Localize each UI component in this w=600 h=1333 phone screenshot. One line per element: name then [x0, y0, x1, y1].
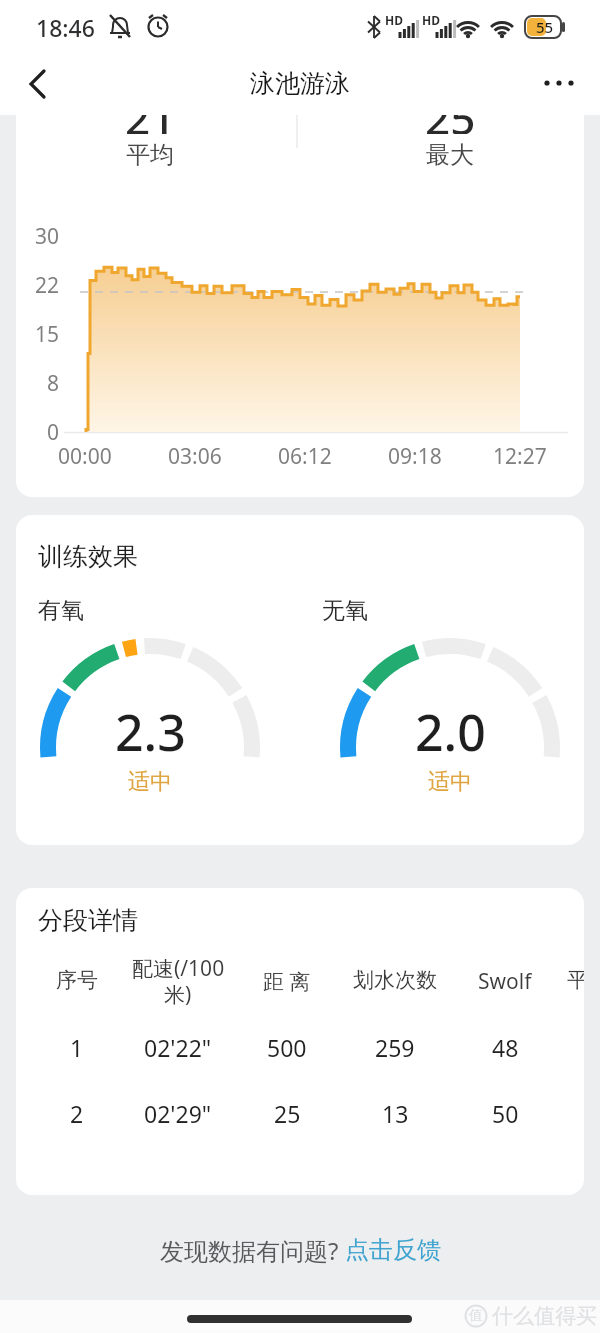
staticText: 03:06: [168, 442, 222, 468]
staticText: 02'29": [144, 1098, 212, 1126]
staticText: 48: [492, 1032, 519, 1060]
staticText: 25: [425, 115, 476, 134]
staticText: 分段详情: [38, 905, 138, 935]
staticText: 泳池游泳: [250, 68, 350, 99]
staticText: 有氧: [38, 596, 84, 624]
staticText: 适中: [428, 768, 472, 796]
staticText: 米): [164, 980, 192, 1006]
staticText: 500: [267, 1032, 307, 1060]
staticText: 55: [536, 17, 554, 37]
staticText: 平均: [126, 140, 174, 168]
staticText: 训练效果: [38, 541, 138, 571]
staticText: 距 离: [263, 967, 311, 993]
staticText: 259: [375, 1032, 415, 1060]
staticText: 06:12: [278, 442, 332, 468]
staticText: 22: [35, 271, 60, 297]
staticText: 30: [35, 222, 60, 248]
staticText: 2.0: [415, 698, 486, 758]
staticText: 09:18: [388, 442, 442, 468]
staticText: HD: [422, 12, 440, 28]
staticText: 2: [70, 1098, 84, 1126]
staticText: 18:46: [36, 12, 95, 42]
button[interactable]: [534, 62, 584, 104]
staticText: 1: [70, 1032, 84, 1060]
staticText: 无氧: [322, 596, 368, 624]
staticText: 13: [382, 1098, 409, 1126]
staticText: 25: [274, 1098, 301, 1126]
staticText: 什么值得买: [492, 1303, 597, 1329]
button[interactable]: 点击反馈: [345, 1235, 441, 1265]
staticText: 发现数据有问题?: [160, 1234, 345, 1266]
staticText: 8: [47, 369, 60, 395]
staticText: 平: [567, 967, 584, 993]
staticText: 12:27: [493, 442, 547, 468]
staticText: 划水次数: [353, 967, 437, 993]
staticText: 序号: [56, 967, 98, 993]
button[interactable]: [14, 62, 58, 106]
staticText: 点击反馈: [345, 1235, 441, 1265]
staticText: 适中: [128, 768, 172, 796]
staticText: HD: [385, 12, 403, 28]
staticText: 50: [492, 1098, 519, 1126]
staticText: 值: [469, 1307, 483, 1325]
staticText: 21: [125, 115, 176, 134]
staticText: 02'22": [144, 1032, 212, 1060]
staticText: Swolf: [478, 967, 532, 993]
staticText: 最大: [426, 140, 474, 168]
staticText: 00:00: [58, 442, 112, 468]
staticText: 0: [47, 418, 60, 444]
staticText: 配速(/100: [132, 954, 225, 980]
staticText: 15: [35, 320, 60, 346]
staticText: 2.3: [115, 698, 186, 758]
